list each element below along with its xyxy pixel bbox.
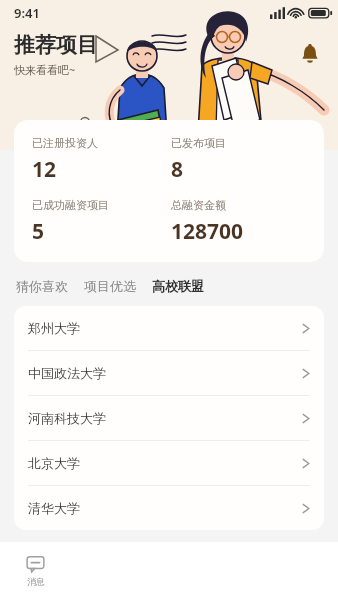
button[interactable]: 河南科技大学 (14, 396, 324, 440)
staticText: 河南科技大学 (28, 410, 106, 426)
button[interactable]: 已注册投资人 (14, 120, 324, 262)
staticText: 已发布项目 (171, 136, 226, 150)
staticText: 北京大学 (28, 455, 80, 471)
staticText: 快来看看吧~ (14, 62, 76, 77)
button[interactable]: 郑州大学 (14, 306, 324, 350)
staticText: 推荐项目 (14, 32, 98, 58)
staticText: 12 (32, 155, 57, 184)
staticText: 已注册投资人 (32, 136, 98, 150)
button[interactable]: Notifications (296, 40, 324, 68)
staticText: 8 (171, 155, 184, 184)
button[interactable]: 清华大学 (14, 486, 324, 530)
staticText: 郑州大学 (28, 320, 80, 336)
button[interactable]: 猜你喜欢 (16, 274, 68, 298)
staticText: 中国政法大学 (28, 365, 106, 381)
button[interactable]: 高校联盟 (152, 274, 204, 298)
button[interactable]: 消息 (22, 550, 49, 591)
button[interactable]: 项目优选 (84, 274, 136, 298)
staticText: 项目优选 (84, 278, 136, 294)
staticText: 已成功融资项目 (32, 198, 109, 212)
staticText: 清华大学 (28, 500, 80, 516)
staticText: 128700 (171, 217, 244, 246)
staticText: 9:41 (14, 4, 40, 22)
staticText: 总融资金额 (171, 198, 226, 212)
staticText: 高校联盟 (152, 278, 204, 294)
staticText: 猜你喜欢 (16, 278, 68, 294)
staticText: 消息 (27, 576, 45, 587)
staticText: 5 (32, 217, 45, 246)
button[interactable]: 北京大学 (14, 441, 324, 485)
button[interactable]: 中国政法大学 (14, 351, 324, 395)
